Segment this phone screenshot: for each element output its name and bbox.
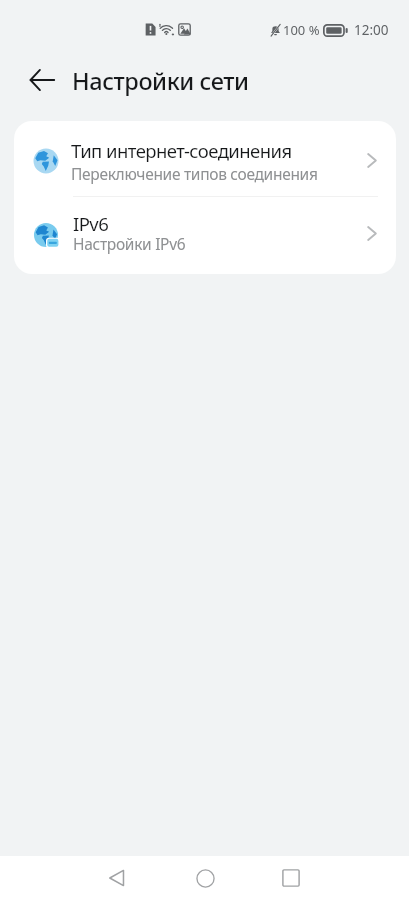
- button[interactable]: Тип интернет-соединения: [14, 121, 396, 196]
- button[interactable]: Back: [18, 56, 66, 104]
- staticText: Тип интернет-соединения: [71, 138, 292, 163]
- staticText: Настройки IPv6: [73, 233, 186, 254]
- staticText: Переключение типов соединения: [71, 163, 318, 184]
- staticText: 12:00: [354, 21, 389, 39]
- button[interactable]: IPv6: [14, 197, 396, 274]
- staticText: 100 %: [283, 21, 320, 39]
- staticText: Настройки сети: [72, 65, 249, 97]
- button[interactable]: Home: [183, 856, 227, 900]
- staticText: IPv6: [73, 211, 109, 236]
- button[interactable]: Recents: [269, 856, 313, 900]
- button[interactable]: Back: [95, 856, 139, 900]
